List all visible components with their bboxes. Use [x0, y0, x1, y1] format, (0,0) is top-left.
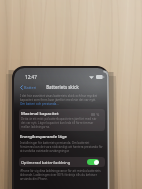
staticText: Maximal kapacitet [21, 111, 59, 117]
button[interactable]: Om batteri och prestanda… [20, 102, 59, 106]
staticText: iPhone lär sig dina laddningsvanor för a… [20, 169, 103, 181]
staticText: Batteri [24, 85, 37, 90]
staticText: Inställningar för batteriets prestanda. … [20, 141, 103, 153]
staticText: Energibesparande läge [20, 134, 67, 140]
button[interactable]: Optimerad batteriladdning [19, 157, 105, 167]
button[interactable]: Batteri [19, 84, 38, 91]
staticText: 12:47 [25, 74, 37, 80]
staticText: Detta är ett mått på batterikapaciteten … [21, 117, 100, 129]
staticText: Optimerad batteriladdning [21, 160, 71, 165]
button[interactable]: Maximal kapacitet [19, 109, 105, 131]
staticText: 88 % [91, 112, 100, 117]
staticText: I det här avsnittet visas batteriets ski… [20, 94, 101, 102]
button[interactable]: Optimerad batteriladdning, på [87, 159, 99, 165]
staticText: Batteriets skick [46, 84, 79, 90]
